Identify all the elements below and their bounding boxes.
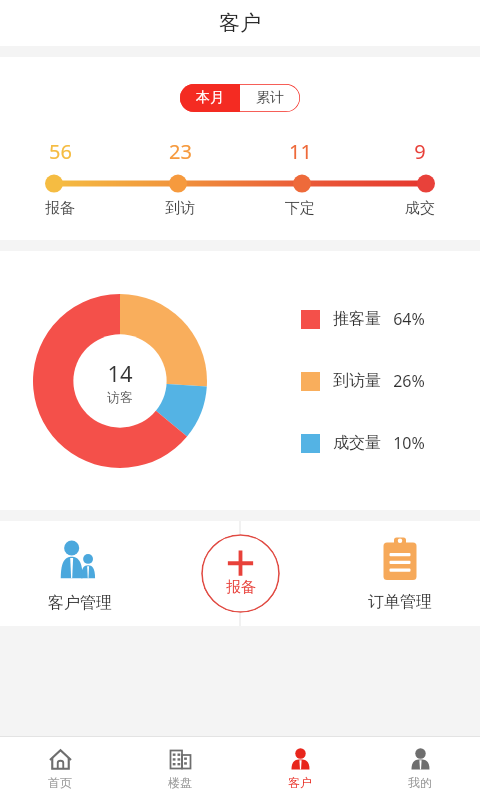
staticText: 客户管理 — [48, 593, 112, 613]
button[interactable]: 客户 — [240, 737, 360, 800]
staticText: 访客 — [107, 389, 133, 405]
button[interactable]: 我的 — [360, 737, 480, 800]
staticText: 订单管理 — [368, 592, 432, 612]
button[interactable]: 订单管理 — [320, 521, 480, 626]
button[interactable]: 累计 — [240, 84, 300, 112]
staticText: 推客量 — [333, 309, 381, 329]
button[interactable]: 楼盘 — [120, 737, 240, 800]
staticText: 11 — [289, 138, 312, 165]
staticText: 客户 — [288, 775, 312, 790]
staticText: 报备 — [45, 199, 75, 218]
staticText: 10% — [393, 432, 425, 454]
staticText: 56 — [49, 138, 72, 165]
button[interactable]: 本月 — [180, 84, 240, 112]
staticText: 本月 — [196, 89, 224, 107]
button[interactable]: 报备 — [201, 534, 280, 613]
staticText: 成交量 — [333, 433, 381, 453]
staticText: 累计 — [256, 89, 284, 107]
staticText: 报备 — [226, 578, 256, 597]
button[interactable]: 首页 — [0, 737, 120, 800]
staticText: 26% — [393, 370, 425, 392]
staticText: 到访 — [165, 199, 195, 218]
staticText: 下定 — [285, 199, 315, 218]
staticText: 楼盘 — [168, 775, 192, 790]
button[interactable]: 客户管理 — [0, 521, 160, 626]
staticText: 首页 — [48, 775, 72, 790]
staticText: 我的 — [408, 775, 432, 790]
staticText: 23 — [169, 138, 192, 165]
staticText: 14 — [107, 358, 133, 388]
staticText: 9 — [414, 138, 426, 165]
staticText: 64% — [393, 308, 425, 330]
staticText: 成交 — [405, 199, 435, 218]
staticText: 客户 — [219, 10, 261, 36]
staticText: 到访量 — [333, 371, 381, 391]
